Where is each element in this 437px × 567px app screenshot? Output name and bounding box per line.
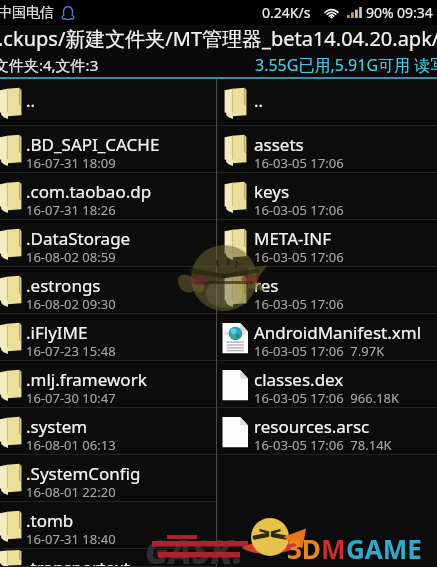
button[interactable]: .BD_SAPI_CACHE [0,126,216,173]
staticText: 3.55G已用,5.91G可用 读写 [255,54,437,76]
staticText: 16-08-01 22:20 [26,483,116,501]
staticText: 0.24K/s [262,3,311,22]
button[interactable]: .. [217,79,437,126]
staticText: GASK. [145,528,244,567]
staticText: 16-07-31 18:26 [26,201,116,219]
staticText: 16-08-02 09:30 [26,295,116,313]
button[interactable]: resources.arsc [217,408,437,455]
staticText: .system [26,415,88,438]
button[interactable]: .. [0,79,216,126]
staticText: assets [254,133,304,156]
staticText: .ckups/新建文件夹/MT管理器_beta14.04.20.apk/ [0,25,437,52]
staticText: 16-07-31 18:09 [26,154,116,172]
staticText: 16-08-02 08:59 [26,248,116,266]
staticText: AndroidManifest.xml [254,321,422,344]
button[interactable]: res [217,267,437,314]
staticText: 16-03-05 17:06 [254,154,344,172]
button[interactable]: .ckups/新建文件夹/MT管理器_beta14.04.20.apk/ [0,25,437,52]
staticText: .iFlyIME [26,321,88,344]
staticText: .. [254,89,264,112]
button[interactable]: .estrongs [0,267,216,314]
button[interactable]: .transportext [0,549,216,567]
staticText: 16-08-01 06:13 [26,436,116,454]
staticText: 90% [366,3,394,22]
staticText: .. [26,89,36,112]
staticText: resources.arsc [254,415,370,438]
staticText: 16-07-31 18:40 [26,530,116,548]
button[interactable]: keys [217,173,437,220]
button[interactable]: .tomb [0,502,216,549]
staticText: 16-03-05 17:06 [254,295,344,313]
button[interactable]: AndroidManifest.xml [217,314,437,361]
button[interactable]: .iFlyIME [0,314,216,361]
staticText: 16-03-05 17:06 7.97K [254,342,385,360]
staticText: .estrongs [26,274,101,297]
staticText: keys [254,180,290,203]
staticText: 16-03-05 17:06 78.14K [254,436,392,454]
staticText: .mlj.framework [26,368,147,391]
staticText: 09:34 [397,3,433,22]
staticText: GAME [346,531,422,566]
staticText: .transportext [26,556,130,567]
button[interactable]: .DataStorage [0,220,216,267]
button[interactable]: classes.dex [217,361,437,408]
staticText: META-INF [254,227,331,250]
button[interactable]: .mlj.framework [0,361,216,408]
staticText: 16-03-05 17:06 [254,248,344,266]
staticText: 3D [287,531,321,566]
staticText: 16-07-23 15:48 [26,342,116,360]
staticText: .tomb [26,509,74,532]
staticText: 16-07-30 10:47 [26,389,116,407]
button[interactable]: .SystemConfig [0,455,216,502]
button[interactable]: .system [0,408,216,455]
staticText: .com.taobao.dp [26,180,152,203]
staticText: 中国电信 [0,4,54,22]
staticText: .BD_SAPI_CACHE [26,133,160,156]
staticText: 文件夹:4,文件:3 [0,55,99,75]
staticText: 16-03-05 17:06 966.18K [254,389,400,407]
button[interactable]: assets [217,126,437,173]
staticText: M [321,531,346,566]
staticText: classes.dex [254,368,344,391]
button[interactable]: META-INF [217,220,437,267]
button[interactable]: .com.taobao.dp [0,173,216,220]
staticText: .SystemConfig [26,462,141,485]
staticText: .DataStorage [26,227,131,250]
staticText: 16-03-05 17:06 [254,201,344,219]
staticText: res [254,274,279,297]
